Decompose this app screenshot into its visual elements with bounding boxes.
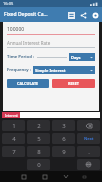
staticText: Frequency : [7, 67, 31, 73]
button[interactable]: 4 [2, 133, 25, 144]
button[interactable]: Keyboard layout [76, 171, 93, 182]
staticText: 4 [12, 135, 16, 143]
staticText: RESET [68, 81, 80, 86]
button[interactable]: 1 [2, 120, 25, 131]
button[interactable]: Hide keyboard [55, 171, 76, 182]
staticText: Next [84, 136, 94, 141]
staticText: Days [71, 55, 81, 60]
staticText: 1 [12, 122, 16, 130]
staticText: Interest [5, 113, 18, 118]
button[interactable]: Simple Interest [33, 66, 95, 74]
staticText: Simple Interest [35, 68, 66, 73]
button[interactable]: CALCULATE [7, 79, 49, 88]
staticText: 100000 [7, 26, 25, 33]
button[interactable]: 2 [27, 120, 50, 131]
staticText: 5 [37, 135, 41, 143]
staticText: Annual Interest Rate [7, 40, 51, 46]
button[interactable]: 5 [27, 133, 50, 144]
button[interactable]: 9 [52, 146, 75, 157]
button[interactable]: Delete [77, 120, 100, 131]
staticText: 8 [37, 148, 41, 156]
staticText: Fixed Deposit Ca... [4, 11, 48, 18]
button[interactable]: 3 [52, 120, 75, 131]
button[interactable]: RESET [52, 79, 95, 88]
staticText: CALCULATE [17, 81, 39, 86]
staticText: 0 [37, 161, 41, 169]
staticText: 6 [62, 135, 66, 143]
button[interactable]: Days [69, 53, 95, 61]
staticText: 3 [62, 122, 66, 130]
button[interactable]: Share [77, 9, 89, 21]
button[interactable]: Change language [77, 159, 100, 170]
button[interactable]: Recents [13, 171, 34, 182]
button[interactable]: 0 [27, 159, 50, 170]
staticText: Time Period : [7, 54, 35, 60]
button[interactable]: 6 [52, 133, 75, 144]
button[interactable]: 8 [27, 146, 50, 157]
button[interactable]: Home [34, 171, 55, 182]
button[interactable]: 7 [2, 146, 25, 157]
staticText: 2 [37, 122, 41, 130]
staticText: 9 [62, 148, 66, 156]
button[interactable]: Notes [65, 9, 77, 21]
button[interactable]: Settings [89, 9, 101, 21]
button[interactable]: Interest [2, 112, 20, 118]
staticText: 7 [12, 148, 16, 156]
button[interactable]: Next [77, 133, 100, 144]
staticText: 16:05 [3, 1, 14, 6]
staticText: . [88, 148, 90, 156]
